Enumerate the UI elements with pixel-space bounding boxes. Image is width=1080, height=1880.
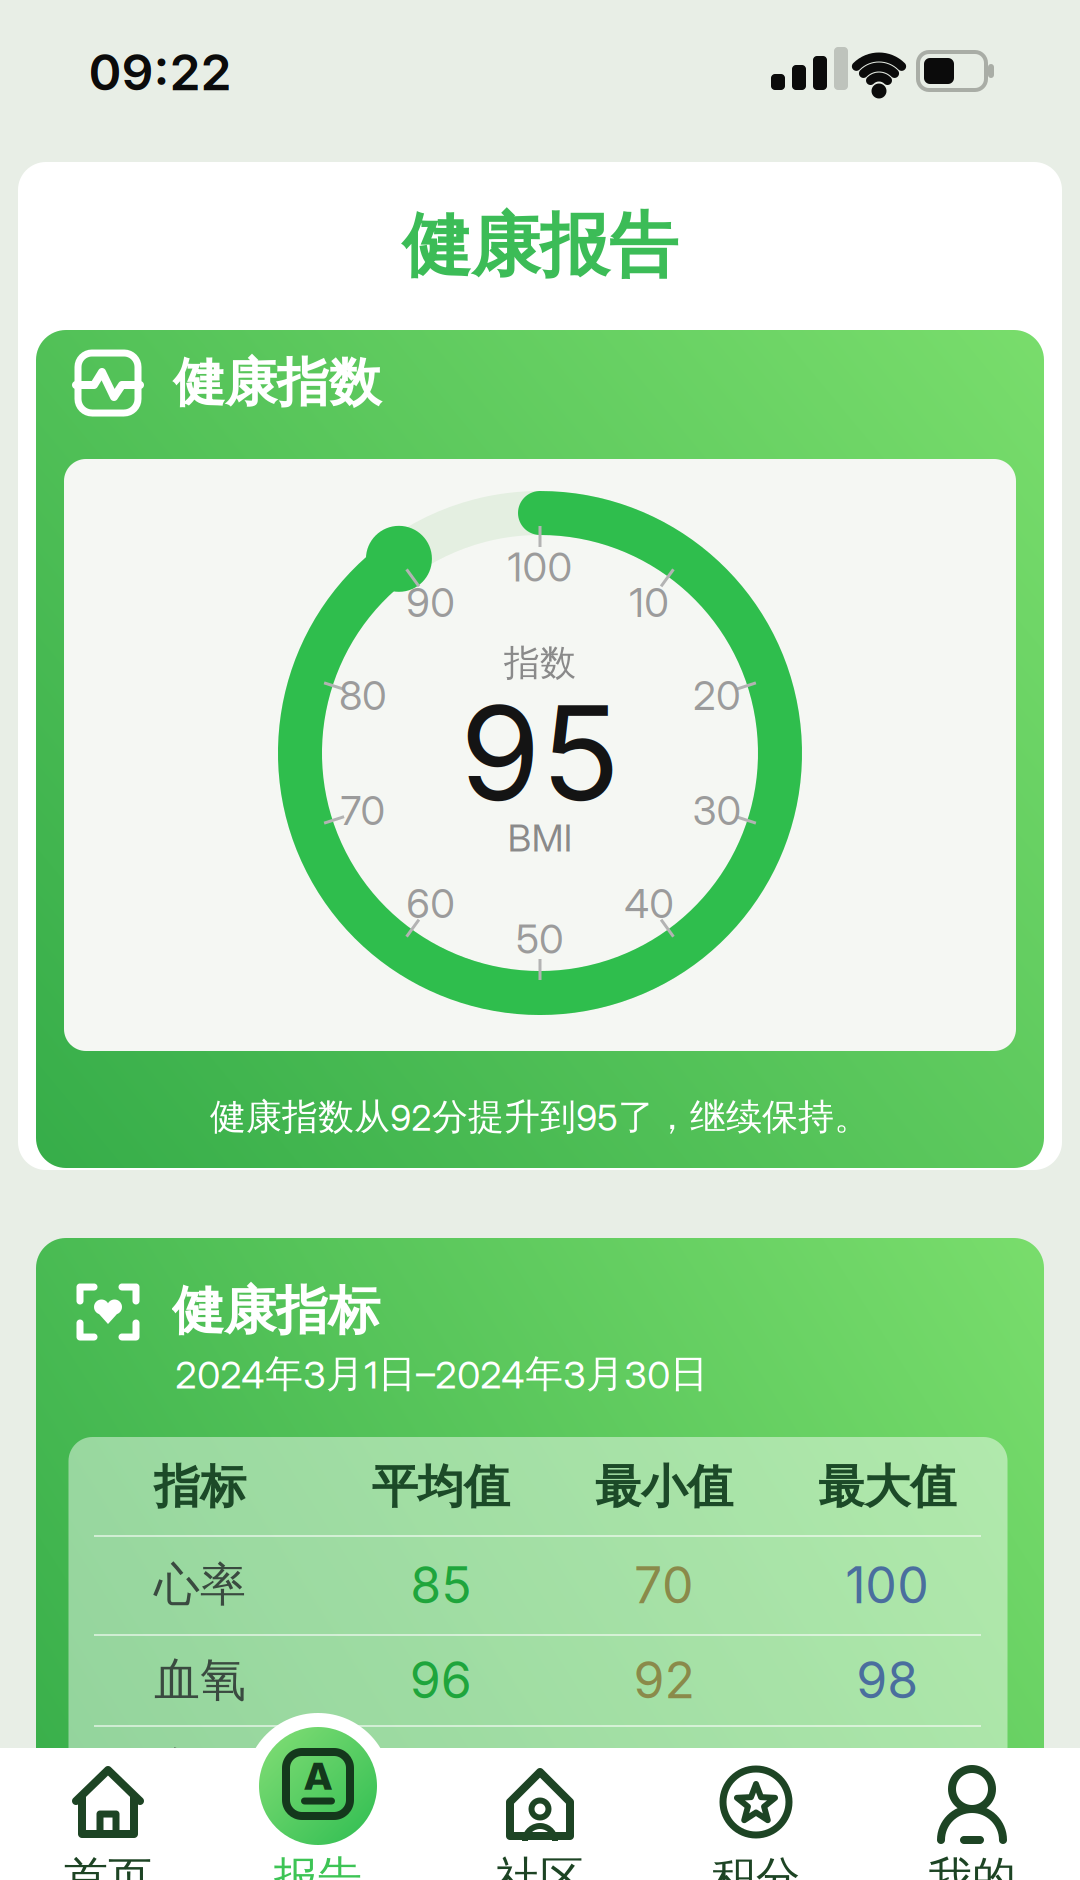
staticText: 60: [406, 879, 455, 928]
staticText: 心率: [154, 1556, 246, 1614]
staticText: 96: [410, 1650, 472, 1710]
staticText: 92: [633, 1650, 694, 1710]
staticText: 80: [339, 671, 387, 720]
staticText: 20: [693, 671, 741, 720]
staticText: BMI: [507, 816, 572, 860]
staticText: 09:22: [88, 42, 231, 102]
staticText: 130: [846, 1739, 929, 1799]
staticText: 10: [629, 578, 669, 627]
staticText: 首页: [64, 1850, 152, 1880]
staticText: 社区: [496, 1850, 584, 1880]
staticText: A: [304, 1753, 332, 1799]
button[interactable]: A: [216, 1748, 432, 1880]
staticText: 70: [634, 1555, 694, 1615]
staticText: 健康报告: [402, 202, 678, 289]
staticText: 50: [516, 915, 564, 963]
staticText: 报告: [274, 1850, 362, 1880]
staticText: 100: [845, 1555, 929, 1615]
staticText: 2024年3月1日–2024年3月30日: [175, 1350, 708, 1398]
button[interactable]: 积分: [648, 1748, 864, 1880]
button[interactable]: 社区: [432, 1748, 648, 1880]
staticText: 血氧: [154, 1651, 246, 1709]
staticText: 100: [507, 543, 572, 591]
staticText: 90: [406, 578, 455, 627]
staticText: 指标: [154, 1458, 246, 1516]
staticText: 最小值: [595, 1458, 733, 1516]
staticText: 95: [460, 674, 620, 832]
staticText: 平均值: [372, 1458, 510, 1516]
staticText: 最大值: [818, 1458, 956, 1516]
button[interactable]: 首页: [0, 1748, 216, 1880]
button[interactable]: 我的: [864, 1748, 1080, 1880]
staticText: 血压: [154, 1740, 246, 1798]
staticText: 健康指标: [172, 1278, 380, 1344]
staticText: 105: [623, 1739, 705, 1799]
staticText: 85: [410, 1555, 471, 1615]
staticText: 98: [856, 1650, 918, 1710]
staticText: 116: [405, 1739, 476, 1799]
staticText: 健康指数从92分提升到95了，继续保持。: [210, 1094, 870, 1140]
staticText: 指数: [504, 640, 576, 686]
staticText: 积分: [712, 1850, 800, 1880]
staticText: 我的: [928, 1850, 1016, 1880]
staticText: 40: [624, 879, 674, 928]
staticText: 30: [692, 786, 741, 835]
staticText: 健康指数: [173, 350, 381, 416]
staticText: 70: [341, 786, 386, 835]
